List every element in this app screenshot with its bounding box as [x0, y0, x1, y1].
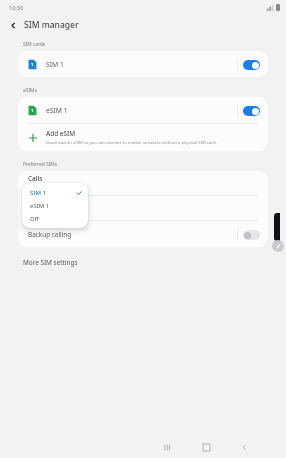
staticText: SIM manager — [24, 19, 79, 31]
staticText: Messages — [28, 199, 59, 208]
staticText: 1 — [31, 62, 34, 67]
button[interactable]: Toggle on — [243, 106, 260, 116]
button[interactable]: Messages — [18, 196, 268, 220]
button[interactable]: 1 — [18, 97, 268, 123]
button[interactable]: Off — [22, 212, 88, 225]
button[interactable]: eSIM 1 — [22, 199, 88, 212]
button[interactable]: Add eSIM — [18, 124, 268, 151]
button[interactable]: Collapse panel — [272, 240, 284, 252]
staticText: Preferred SIMs — [23, 161, 58, 168]
button[interactable]: More SIM settings — [0, 252, 286, 272]
button[interactable]: Toggle off — [243, 230, 260, 240]
button[interactable]: SIM 1 — [22, 186, 88, 199]
button[interactable]: Backup calling — [18, 221, 268, 247]
staticText: SIM 1 — [30, 189, 46, 197]
button[interactable]: Back — [233, 436, 255, 458]
button[interactable]: Toggle on — [243, 60, 260, 70]
staticText: Add eSIM — [46, 129, 76, 138]
staticText: Backup calling — [28, 230, 72, 239]
button[interactable]: 1 — [18, 51, 268, 77]
button[interactable]: Home — [195, 436, 217, 458]
button[interactable]: Recent apps — [156, 436, 178, 458]
button[interactable]: Edge panel handle — [274, 213, 280, 241]
staticText: Off — [30, 215, 39, 223]
staticText: SIM 1 — [46, 60, 64, 69]
staticText: eSIMs — [23, 87, 37, 94]
staticText: More SIM settings — [23, 258, 78, 267]
staticText: eSIM 1 — [46, 106, 68, 115]
staticText: Download an eSIM so you can connect to m… — [46, 140, 217, 146]
button[interactable]: Back — [6, 18, 20, 32]
button[interactable]: Calls — [18, 171, 268, 195]
staticText: SIM 1 — [28, 185, 41, 192]
staticText: SIM cards — [23, 41, 46, 48]
staticText: Calls — [28, 174, 43, 183]
staticText: 1 — [31, 108, 34, 113]
staticText: 10:30 — [9, 4, 24, 11]
staticText: eSIM 1 — [30, 202, 50, 210]
